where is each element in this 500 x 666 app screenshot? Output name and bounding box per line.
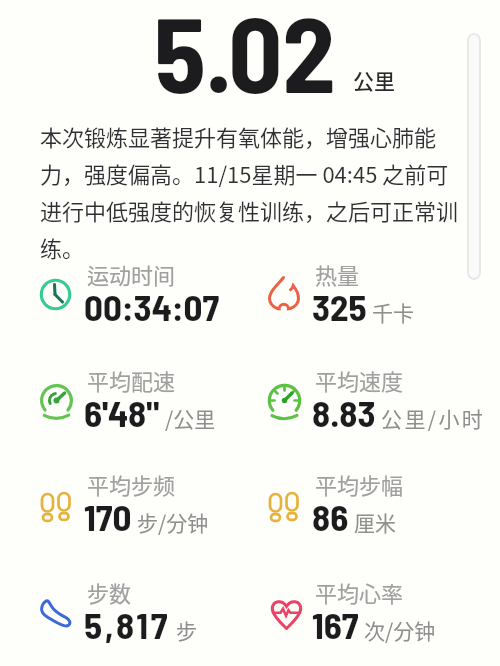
staticText: 167 [312, 602, 359, 646]
staticText: 5,817 [84, 602, 171, 646]
staticText: 平均心率 [315, 576, 404, 608]
staticText: 步/分钟 [137, 507, 209, 537]
staticText: 170 [84, 494, 132, 538]
staticText: 5.02 [154, 0, 336, 114]
staticText: 热量 [315, 258, 360, 290]
staticText: 86 [312, 494, 349, 538]
button[interactable]: 步数 [38, 576, 197, 652]
button[interactable]: 平均心率 [266, 576, 436, 652]
staticText: 千卡 [372, 297, 414, 327]
staticText: 平均配速 [87, 364, 176, 396]
button[interactable]: 热量 [266, 258, 414, 334]
staticText: 325 [312, 284, 367, 328]
staticText: 步 [176, 615, 197, 645]
staticText: 6'48" [84, 390, 160, 434]
button[interactable]: 运动时间 [38, 258, 220, 334]
staticText: 运动时间 [87, 258, 176, 290]
staticText: 厘米 [354, 507, 396, 537]
staticText: 公里/小时 [381, 403, 486, 433]
staticText: 00:34:07 [84, 284, 220, 328]
staticText: 平均步频 [87, 468, 176, 500]
staticText: 次/分钟 [364, 615, 436, 645]
staticText: 本次锻炼显著提升有氧体能，增强心肺能 力，强度偏高。11/15星期一 04:45… [40, 120, 459, 263]
staticText: 平均速度 [315, 364, 404, 396]
staticText: /公里 [165, 403, 216, 433]
staticText: 平均步幅 [315, 468, 404, 500]
staticText: 公里 [353, 65, 395, 95]
button[interactable]: 平均速度 [266, 364, 486, 440]
button[interactable]: 平均步幅 [266, 468, 401, 544]
staticText: 8.83 [312, 390, 376, 434]
button[interactable]: 平均配速 [38, 364, 216, 440]
staticText: 步数 [87, 576, 132, 608]
button[interactable]: 平均步频 [38, 468, 209, 544]
